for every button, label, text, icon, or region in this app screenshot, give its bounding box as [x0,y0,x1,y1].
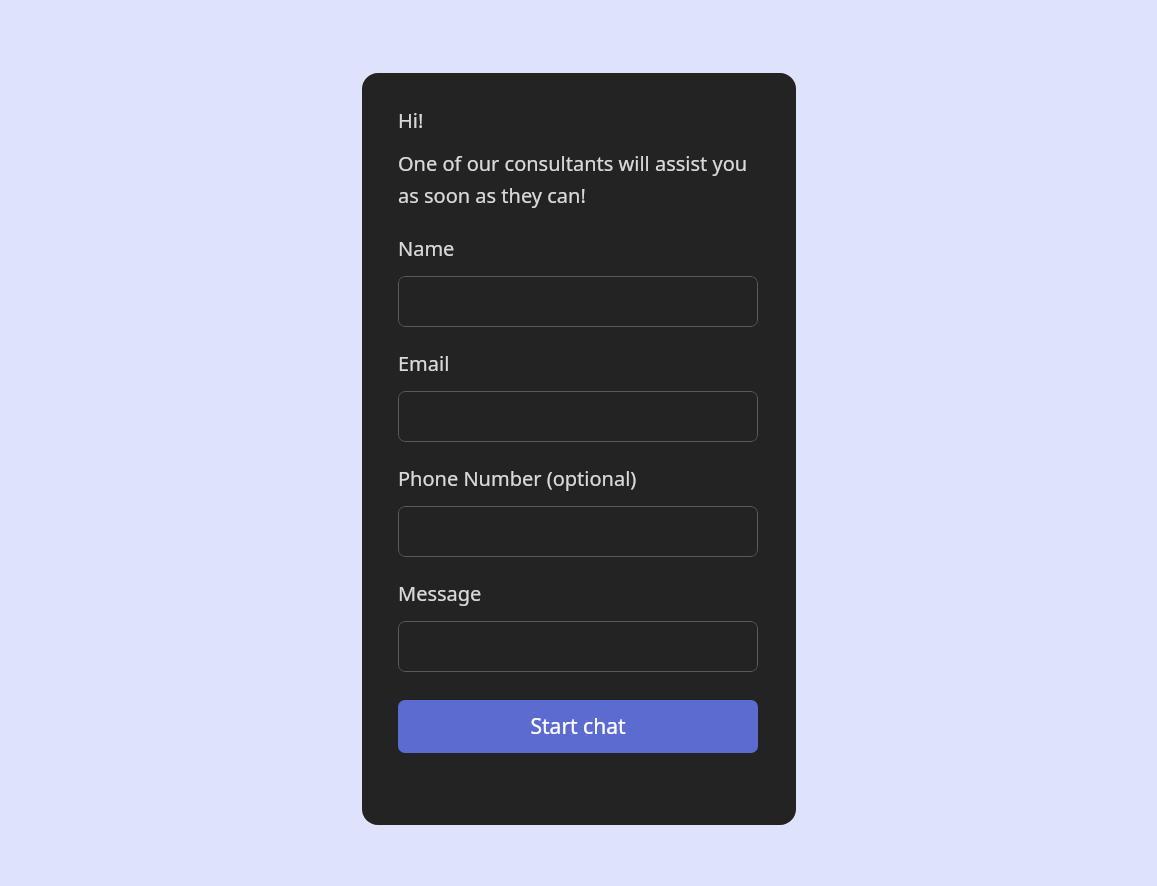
staticText: Hi! [398,107,424,134]
staticText: Email [398,350,450,377]
button[interactable] [398,276,758,327]
staticText: Phone Number (optional) [398,465,637,492]
staticText: Message [398,580,482,607]
button[interactable] [398,621,758,672]
button[interactable]: Start chat [398,700,758,753]
staticText: Name [398,235,455,262]
staticText: Start chat [530,712,626,741]
staticText: One of our consultants will assist you a… [398,150,758,209]
button[interactable] [398,391,758,442]
button[interactable] [398,506,758,557]
